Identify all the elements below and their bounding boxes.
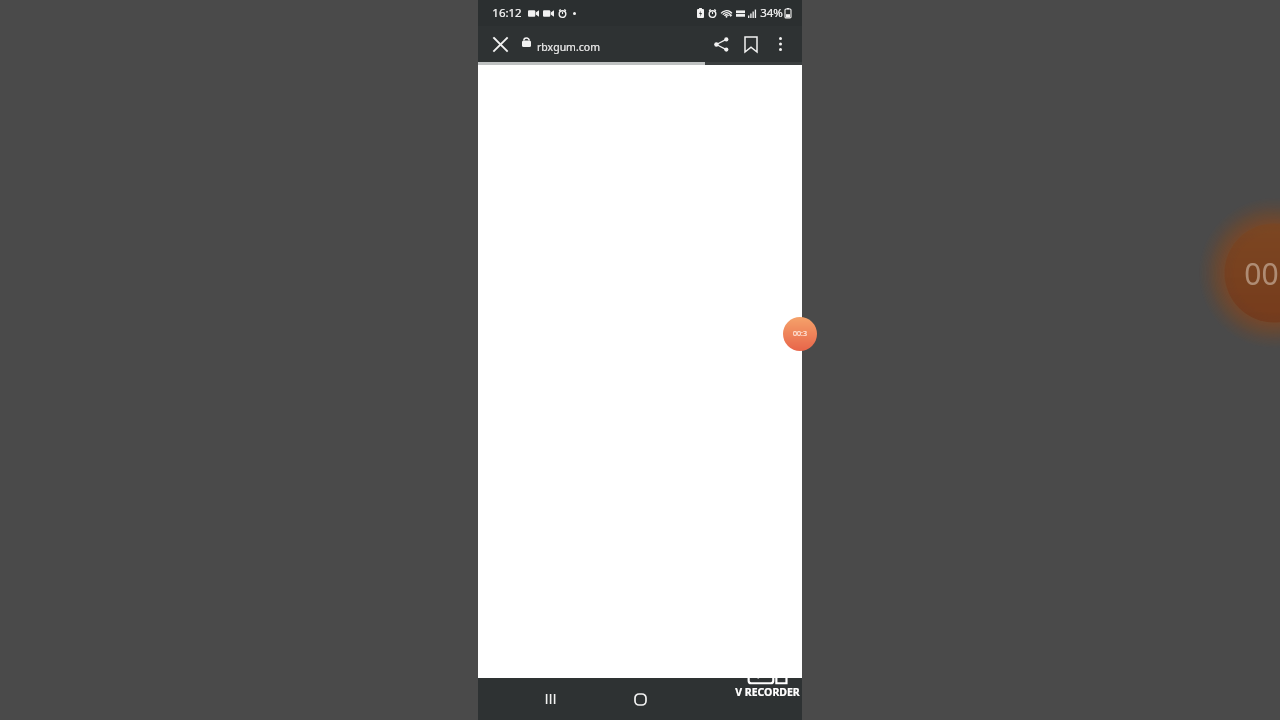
- button[interactable]: Bookmark: [736, 29, 766, 59]
- staticText: V RECORDER: [735, 685, 800, 699]
- button[interactable]: Home: [623, 682, 657, 716]
- button[interactable]: Recent apps: [534, 682, 568, 716]
- button[interactable]: Close: [486, 30, 514, 58]
- button[interactable]: rbxgum.com: [522, 26, 600, 62]
- staticText: 00:3: [793, 329, 807, 339]
- staticText: 34%: [760, 5, 783, 21]
- staticText: rbxgum.com: [537, 40, 600, 54]
- button[interactable]: Share: [706, 29, 736, 59]
- button[interactable]: More options: [766, 30, 794, 58]
- staticText: 00:3: [1244, 253, 1280, 294]
- button[interactable]: Recording timer: [783, 317, 817, 351]
- staticText: 16:12: [492, 5, 522, 21]
